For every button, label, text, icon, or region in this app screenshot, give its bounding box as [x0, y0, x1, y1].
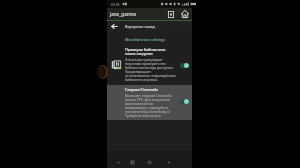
button[interactable]: Volume	[163, 157, 173, 167]
staticText: 09:58	[111, 2, 120, 6]
staticText: Вернуться назад	[125, 24, 155, 29]
button[interactable]: Back	[107, 21, 192, 32]
button[interactable]: Home	[127, 157, 137, 167]
staticText: Включает гладкий Cinematic режим FPS. Дл…	[125, 93, 176, 118]
staticText: Проверка библиотеки после загрузки	[125, 47, 176, 56]
button[interactable]: Гладкая Cinematic	[107, 85, 192, 120]
other: Back	[111, 23, 118, 30]
button[interactable]: Toggle	[180, 63, 189, 68]
staticText: Гладкая Cinematic	[125, 87, 159, 92]
staticText: Miscellaneous settings	[125, 37, 166, 42]
button[interactable]: Проверка библиотеки после загрузки	[107, 45, 192, 84]
button[interactable]: Screenshot	[166, 9, 176, 19]
staticText: java_games	[110, 11, 137, 18]
staticText: Эта опция принуждает персонаж проверить …	[125, 57, 176, 82]
button[interactable]: Toggle	[180, 99, 189, 104]
button[interactable]: Home	[180, 9, 190, 19]
button[interactable]: Recents	[144, 157, 154, 167]
button[interactable]: Back	[113, 157, 123, 167]
